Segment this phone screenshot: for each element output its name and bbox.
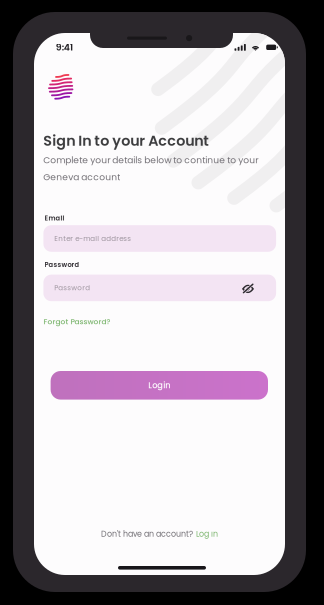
staticText: Enter e-mail address — [54, 234, 131, 243]
staticText: Password — [45, 260, 80, 269]
staticText: Password — [54, 283, 90, 293]
staticText: Forgot Password? — [43, 316, 110, 327]
staticText: Complete your details below to continue … — [43, 154, 258, 166]
staticText: Email — [45, 213, 65, 223]
staticText: Sign In to your Account — [43, 131, 209, 151]
staticText: Login — [148, 379, 170, 391]
staticText: Geneva account — [43, 171, 120, 183]
button[interactable]: Forgot Password? — [42, 314, 111, 329]
staticText: 9:41 — [56, 41, 73, 54]
button[interactable]: Login — [51, 371, 268, 400]
button[interactable]: Log in — [196, 529, 218, 540]
staticText: Don't have an account? — [101, 529, 193, 540]
staticText: Log in — [196, 529, 218, 540]
